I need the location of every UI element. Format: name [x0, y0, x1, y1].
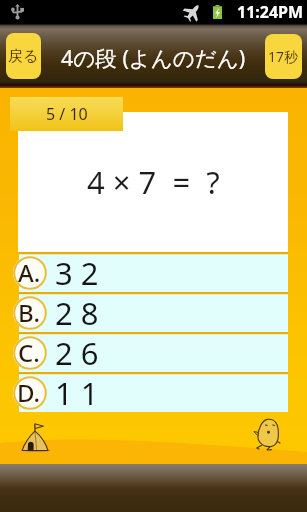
staticText: 戻る: [8, 47, 39, 66]
staticText: 1 1: [55, 372, 99, 412]
button[interactable]: C.: [19, 332, 288, 372]
staticText: 17秒: [268, 47, 299, 66]
button[interactable]: 5 / 10: [10, 97, 123, 131]
staticText: C.: [18, 336, 40, 369]
staticText: 3 2: [55, 252, 99, 292]
staticText: 11:24PM: [237, 1, 304, 23]
button[interactable]: 戻る: [6, 33, 41, 79]
button[interactable]: B.: [19, 292, 288, 332]
button[interactable]: D.: [19, 372, 288, 412]
button[interactable]: 17秒: [265, 34, 302, 79]
staticText: B.: [18, 296, 40, 329]
staticText: A.: [18, 256, 41, 289]
button[interactable]: A.: [19, 252, 288, 292]
staticText: 2 8: [55, 292, 99, 332]
other: USB connected: [12, 4, 23, 19]
staticText: 5 / 10: [46, 103, 88, 125]
staticText: 4 × 7 = ?: [87, 161, 220, 203]
staticText: 4の段 (よんのだん): [61, 43, 246, 72]
staticText: D.: [17, 376, 41, 409]
staticText: 2 6: [55, 332, 99, 372]
